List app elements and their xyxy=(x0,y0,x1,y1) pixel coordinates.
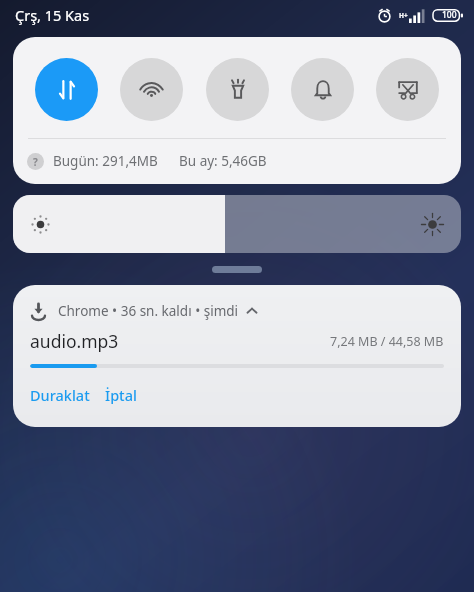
button[interactable]: Wi-Fi xyxy=(120,58,183,121)
button[interactable]: Duraklat xyxy=(30,385,90,405)
staticText: ? xyxy=(33,155,38,169)
staticText: İptal xyxy=(105,385,137,405)
button[interactable]: Mobile data xyxy=(35,58,98,121)
button[interactable] xyxy=(13,195,461,253)
button[interactable]: Chrome • 36 sn. kaldı • şimdi xyxy=(13,285,461,427)
button[interactable]: İptal xyxy=(105,385,137,405)
button[interactable]: ? xyxy=(27,152,461,170)
staticText: Çrş, 15 Kas xyxy=(15,5,90,25)
staticText: Duraklat xyxy=(30,385,90,405)
staticText: audio.mp3 xyxy=(30,329,119,353)
button[interactable]: Screenshot xyxy=(376,58,439,121)
button[interactable] xyxy=(212,266,262,273)
staticText: 7,24 MB / 44,58 MB xyxy=(330,333,444,350)
staticText: Bu ay: 5,46GB xyxy=(179,152,267,170)
button[interactable]: Flashlight xyxy=(206,58,269,121)
staticText: H+ xyxy=(399,11,408,20)
staticText: Bugün: 291,4MB xyxy=(53,152,158,170)
staticText: 100 xyxy=(442,9,457,21)
staticText: Chrome • 36 sn. kaldı • şimdi xyxy=(58,302,239,320)
button[interactable]: Ringer xyxy=(291,58,354,121)
